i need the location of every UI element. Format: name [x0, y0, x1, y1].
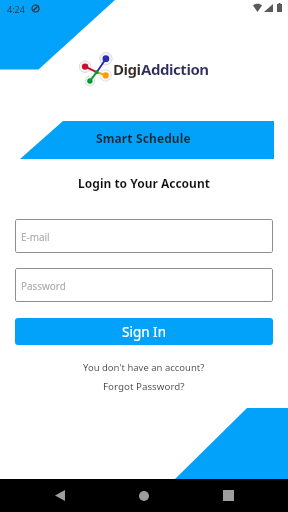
button[interactable]: Back: [36, 479, 84, 512]
button[interactable]: Forgot Password?: [0, 380, 288, 393]
staticText: Forgot Password?: [103, 380, 185, 393]
staticText: 4:24: [7, 3, 25, 15]
button[interactable]: Password: [15, 268, 273, 302]
staticText: Login to Your Account: [78, 175, 210, 191]
staticText: Sign In: [122, 323, 166, 341]
button[interactable]: You don't have an account?: [0, 361, 288, 374]
button[interactable]: Home: [120, 479, 168, 512]
staticText: You don't have an account?: [83, 361, 205, 374]
button[interactable]: Recent apps: [204, 479, 252, 512]
staticText: Digi: [113, 59, 141, 79]
staticText: E-mail: [21, 230, 50, 243]
button[interactable]: Sign In: [15, 318, 273, 345]
staticText: Addiction: [141, 59, 209, 79]
button[interactable]: E-mail: [15, 219, 273, 253]
staticText: Password: [21, 279, 66, 292]
staticText: Smart Schedule: [96, 130, 191, 146]
